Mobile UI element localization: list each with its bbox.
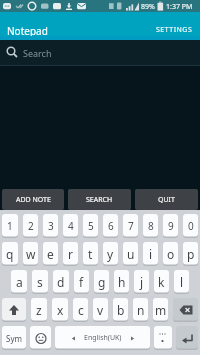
- button[interactable]: h: [114, 270, 129, 294]
- staticText: 3: [48, 219, 54, 233]
- staticText: Sym: [6, 333, 22, 344]
- button[interactable]: SETTINGS: [156, 25, 193, 35]
- button[interactable]: English(UK): [55, 326, 150, 350]
- button[interactable]: c: [73, 298, 88, 322]
- button[interactable]: 9: [163, 214, 178, 238]
- button[interactable]: [173, 298, 198, 322]
- staticText: x: [57, 302, 64, 318]
- staticText: t: [88, 246, 93, 262]
- staticText: q: [6, 246, 14, 262]
- staticText: m: [155, 302, 167, 318]
- button[interactable]: r: [63, 242, 78, 266]
- button[interactable]: Sym: [2, 326, 26, 350]
- staticText: e: [47, 246, 54, 262]
- button[interactable]: 5: [83, 214, 98, 238]
- button[interactable]: l: [174, 270, 189, 294]
- button[interactable]: SEARCH: [68, 189, 131, 210]
- staticText: p: [187, 246, 195, 262]
- button[interactable]: t: [83, 242, 98, 266]
- button[interactable]: 8: [143, 214, 158, 238]
- button[interactable]: 2: [23, 214, 38, 238]
- button[interactable]: i: [143, 242, 158, 266]
- button[interactable]: ADD NOTE: [2, 189, 64, 210]
- staticText: u: [127, 246, 135, 262]
- button[interactable]: n: [133, 298, 148, 322]
- staticText: y: [107, 246, 114, 262]
- staticText: b: [117, 302, 125, 318]
- staticText: w: [26, 246, 36, 262]
- button[interactable]: [176, 326, 198, 350]
- staticText: 2: [28, 219, 34, 233]
- staticText: i: [149, 246, 153, 262]
- staticText: QUIT: [158, 195, 175, 205]
- staticText: SEARCH: [86, 195, 113, 205]
- staticText: k: [158, 274, 165, 290]
- button[interactable]: w: [23, 242, 38, 266]
- button[interactable]: [2, 298, 26, 322]
- button[interactable]: 3: [43, 214, 58, 238]
- staticText: a: [16, 274, 23, 290]
- staticText: 8: [148, 219, 154, 233]
- staticText: j: [140, 274, 144, 290]
- staticText: 4: [68, 219, 74, 233]
- button[interactable]: [154, 326, 172, 350]
- button[interactable]: d: [53, 270, 69, 294]
- button[interactable]: 0: [183, 214, 198, 238]
- button[interactable]: q: [2, 242, 18, 266]
- button[interactable]: 4: [63, 214, 78, 238]
- button[interactable]: g: [94, 270, 109, 294]
- staticText: h: [118, 274, 126, 290]
- button[interactable]: x: [52, 298, 68, 322]
- staticText: 6: [108, 219, 114, 233]
- button[interactable]: m: [153, 298, 168, 322]
- staticText: c: [78, 302, 84, 318]
- staticText: Search: [23, 47, 52, 59]
- staticText: n: [137, 302, 145, 318]
- staticText: 0: [188, 219, 194, 233]
- button[interactable]: y: [103, 242, 118, 266]
- staticText: English(UK): [84, 333, 122, 343]
- staticText: 1: [7, 219, 13, 233]
- button[interactable]: 6: [103, 214, 118, 238]
- button[interactable]: a: [11, 270, 27, 294]
- button[interactable]: QUIT: [135, 189, 198, 210]
- staticText: 1:37 PM: [166, 2, 193, 12]
- staticText: g: [98, 274, 106, 290]
- staticText: Notepad: [7, 24, 48, 38]
- button[interactable]: o: [163, 242, 178, 266]
- button[interactable]: s: [32, 270, 48, 294]
- button[interactable]: [30, 326, 51, 350]
- button[interactable]: 7: [123, 214, 138, 238]
- staticText: r: [68, 246, 73, 262]
- button[interactable]: 1: [2, 214, 18, 238]
- button[interactable]: j: [134, 270, 149, 294]
- staticText: o: [167, 246, 175, 262]
- staticText: d: [57, 274, 65, 290]
- staticText: v: [97, 302, 104, 318]
- staticText: SETTINGS: [156, 25, 193, 35]
- staticText: 5: [88, 219, 94, 233]
- staticText: l: [180, 274, 184, 290]
- button[interactable]: f: [74, 270, 89, 294]
- button[interactable]: e: [43, 242, 58, 266]
- staticText: z: [36, 302, 42, 318]
- button[interactable]: k: [154, 270, 169, 294]
- button[interactable]: p: [183, 242, 198, 266]
- button[interactable]: Search: [0, 40, 200, 65]
- staticText: 9: [168, 219, 174, 233]
- button[interactable]: u: [123, 242, 138, 266]
- button[interactable]: v: [93, 298, 108, 322]
- staticText: s: [37, 274, 43, 290]
- staticText: ADD NOTE: [16, 195, 51, 205]
- button[interactable]: b: [113, 298, 128, 322]
- button[interactable]: z: [31, 298, 47, 322]
- staticText: 89%: [141, 2, 155, 12]
- staticText: 7: [128, 219, 134, 233]
- staticText: f: [79, 274, 84, 290]
